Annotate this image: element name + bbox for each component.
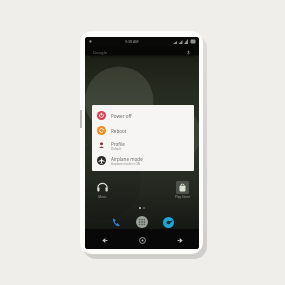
button[interactable]: Airplane mode [92,153,194,168]
staticText: Play Store [175,195,190,199]
staticText: Google [93,50,108,56]
button[interactable]: Browser [160,214,176,230]
staticText: Default [111,147,122,151]
staticText: Airplane mode [111,156,143,162]
button[interactable]: Power off [92,108,194,123]
staticText: Airplane mode is ON [111,162,141,166]
staticText: Power off [111,113,132,119]
staticText: Profile [111,141,125,147]
button[interactable]: Back [85,231,123,249]
button[interactable]: Phone [108,214,124,230]
button[interactable]: Play Store [171,181,193,205]
button[interactable]: Recent apps [161,231,199,249]
staticText: Reboot [111,128,127,134]
staticText: Music [98,195,107,199]
staticText: 9:38 AM [125,39,139,44]
button[interactable]: Music [91,181,113,205]
button[interactable]: Home [123,231,161,249]
button[interactable]: Google [90,47,194,58]
button[interactable]: Reboot [92,123,194,138]
button[interactable]: Profile [92,138,194,153]
button[interactable]: All apps [134,214,150,230]
